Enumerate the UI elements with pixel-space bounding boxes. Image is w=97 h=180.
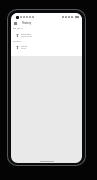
staticText: Sun, Mar 12	[13, 27, 23, 29]
button[interactable]: T	[11, 43, 82, 51]
staticText: culture	[21, 45, 28, 48]
staticText: Good night	[21, 33, 31, 36]
staticText: T	[16, 33, 19, 37]
staticText: History	[22, 21, 32, 25]
button[interactable]: Navigation menu	[12, 20, 19, 27]
staticText: T	[16, 45, 19, 49]
staticText: Sat, Mar 11	[13, 40, 23, 42]
button[interactable]: T	[11, 31, 82, 39]
staticText: Buenas noches	[21, 35, 33, 37]
staticText: cultura	[21, 47, 27, 49]
